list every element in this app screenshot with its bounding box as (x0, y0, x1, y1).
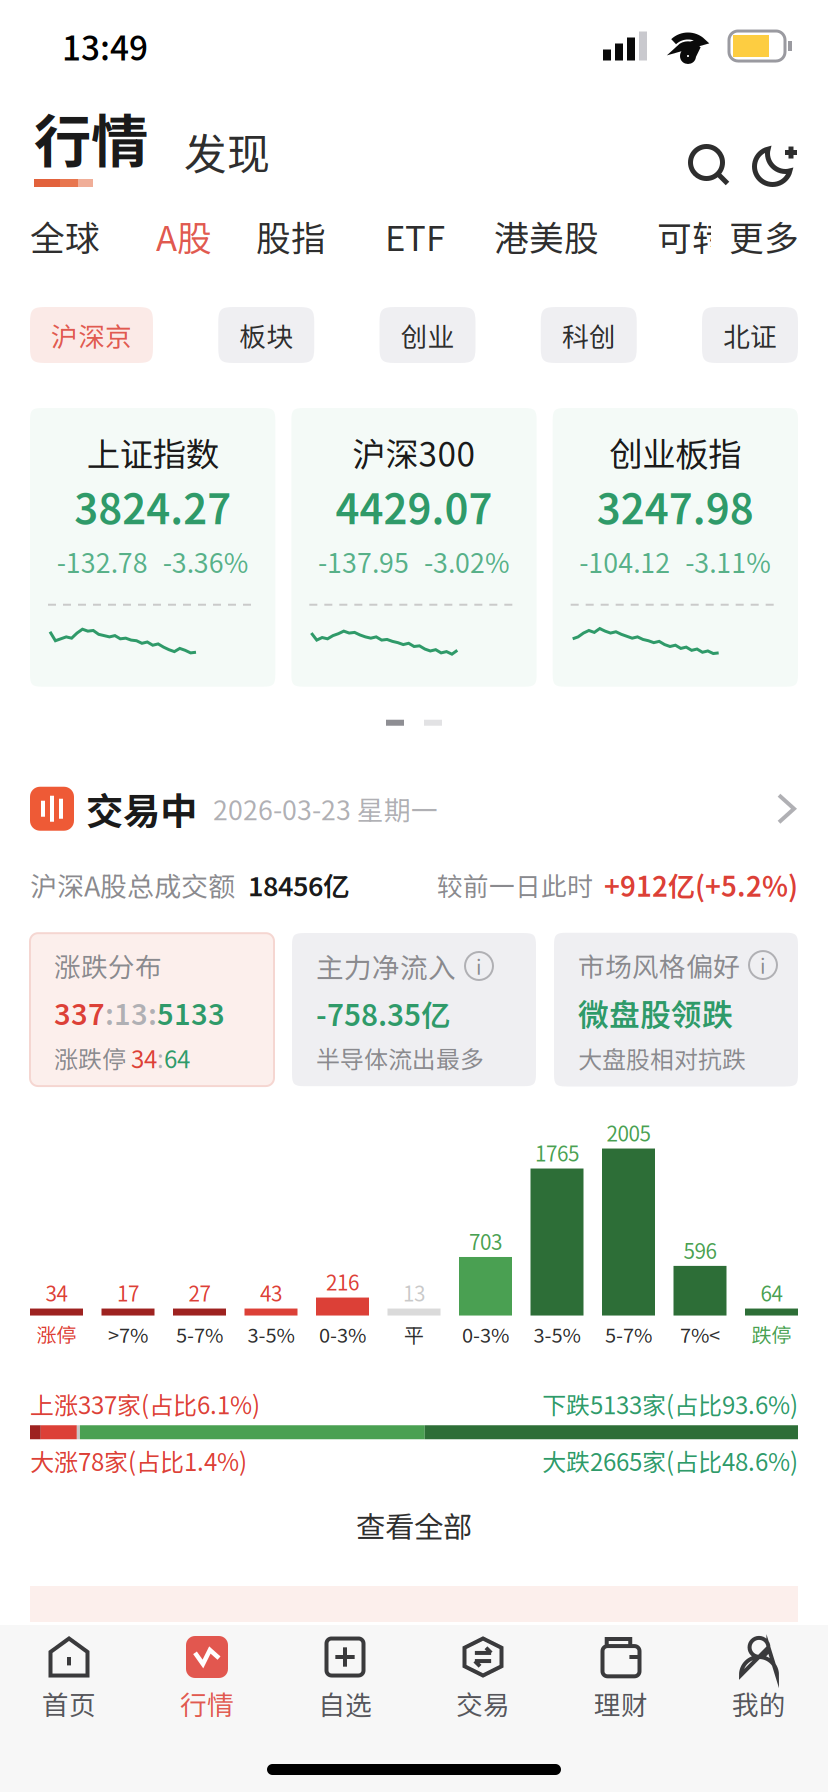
staticText: 13 (403, 1278, 425, 1307)
staticText: 13 (114, 992, 148, 1033)
button[interactable]: 创业 (379, 307, 475, 363)
staticText: 首页 (42, 1684, 96, 1723)
button[interactable]: 可转 (657, 211, 727, 261)
button[interactable]: 自选 (276, 1625, 414, 1731)
staticText: 科创 (562, 316, 616, 354)
staticText: 5133 (157, 992, 225, 1033)
staticText: 创业板指 (609, 428, 741, 476)
button[interactable]: 主力净流入 (292, 933, 536, 1086)
button[interactable]: 更多 (729, 211, 799, 261)
staticText: 64 (760, 1278, 782, 1307)
button[interactable]: 创业板指 (553, 408, 798, 687)
staticText: 涨跌分布 (54, 946, 162, 985)
staticText: 查看全部 (356, 1504, 472, 1546)
staticText: 大盘股相对抗跌 (578, 1041, 746, 1075)
staticText: 沪深A股总成交额 (30, 865, 235, 904)
staticText: 股指 (256, 211, 326, 261)
staticText: 703 (469, 1226, 502, 1256)
button[interactable]: 交易中 (0, 782, 828, 836)
staticText: 5-7% (605, 1319, 652, 1348)
staticText: : (148, 992, 157, 1033)
staticText: 3-5% (247, 1319, 294, 1348)
button[interactable]: 夜间模式 (752, 136, 798, 196)
staticText: 主力净流入 (316, 946, 456, 986)
button[interactable]: ETF (385, 211, 445, 261)
button[interactable]: 搜索 (688, 134, 730, 196)
staticText: 2005 (606, 1118, 650, 1147)
staticText: 平 (404, 1319, 424, 1348)
staticText: -3.02% (424, 542, 510, 581)
button[interactable]: 理财 (552, 1625, 690, 1731)
staticText: ETF (385, 211, 445, 261)
button[interactable]: A股 (156, 211, 212, 261)
staticText: -132.78 (57, 542, 148, 581)
staticText: 更多 (729, 211, 799, 261)
staticText: 微盘股领跌 (578, 990, 733, 1035)
staticText: 大涨78家(占比1.4%) (30, 1443, 247, 1478)
staticText: 13:49 (62, 22, 148, 70)
staticText: 可转 (657, 211, 727, 261)
staticText: 半导体流出最多 (316, 1040, 484, 1075)
button[interactable]: 股指 (256, 211, 326, 261)
staticText: 大跌2665家(占比48.6%) (542, 1443, 798, 1478)
staticText: 沪深京 (51, 316, 132, 354)
staticText: -3.36% (163, 542, 249, 581)
staticText: 行情 (34, 96, 148, 179)
staticText: 交易中 (86, 782, 197, 836)
staticText: 发现 (184, 120, 270, 182)
staticText: A股 (156, 211, 212, 261)
staticText: 沪深300 (352, 428, 475, 476)
button[interactable]: 涨跌分布 (30, 933, 274, 1086)
staticText: 市场风格偏好 (578, 946, 740, 984)
staticText: 34 (45, 1278, 67, 1307)
button[interactable]: 沪深300 (291, 408, 537, 687)
button[interactable]: 首页 (0, 1625, 138, 1731)
button[interactable]: 沪深京 (30, 307, 153, 363)
staticText: 18456亿 (248, 865, 350, 904)
staticText: -758.35亿 (316, 992, 450, 1034)
staticText: 64 (164, 1040, 190, 1075)
button[interactable]: 上证指数 (30, 408, 275, 687)
staticText: 17 (117, 1278, 139, 1307)
staticText: 创业 (400, 316, 454, 354)
staticText: 自选 (318, 1684, 372, 1723)
button[interactable]: 行情 (138, 1625, 276, 1731)
staticText: 3824.27 (74, 476, 231, 536)
button[interactable]: 全球 (30, 211, 100, 261)
button[interactable]: 港美股 (494, 211, 599, 261)
staticText: 涨跌停 (54, 1040, 131, 1075)
staticText: 北证 (723, 316, 777, 354)
staticText: 下跌5133家(占比93.6%) (542, 1386, 798, 1421)
staticText: 涨停 (36, 1319, 76, 1348)
button[interactable]: 行情 (34, 96, 148, 196)
staticText: 港美股 (494, 211, 599, 261)
button[interactable]: 交易 (414, 1625, 552, 1731)
staticText: 2026-03-23 星期一 (213, 789, 438, 828)
staticText: 27 (188, 1278, 210, 1307)
staticText: 行情 (180, 1684, 234, 1723)
button[interactable]: 发现 (184, 120, 270, 196)
button[interactable]: 查看全部 (0, 1500, 828, 1550)
staticText: 5-7% (176, 1319, 223, 1348)
staticText: 3247.98 (597, 476, 754, 536)
staticText: 43 (260, 1278, 282, 1307)
staticText: 理财 (594, 1684, 648, 1723)
staticText: 3-5% (533, 1319, 580, 1348)
staticText: -104.12 (579, 542, 670, 581)
button[interactable]: 北证 (702, 307, 798, 363)
staticText: 交易 (456, 1684, 510, 1723)
staticText: 上证指数 (87, 428, 219, 476)
staticText: i (476, 951, 482, 980)
staticText: 34 (131, 1040, 157, 1075)
staticText: +912亿(+5.2%) (604, 865, 798, 904)
button[interactable]: 科创 (541, 307, 637, 363)
button[interactable]: 我的 (690, 1625, 828, 1731)
button[interactable]: 市场风格偏好 (554, 933, 798, 1086)
staticText: 我的 (732, 1684, 786, 1723)
staticText: 板块 (239, 316, 293, 354)
staticText: 4429.07 (335, 476, 492, 536)
button[interactable]: 板块 (218, 307, 314, 363)
staticText: 全球 (30, 211, 100, 261)
staticText: >7% (108, 1319, 148, 1348)
staticText: 较前一日此时 (437, 866, 593, 903)
